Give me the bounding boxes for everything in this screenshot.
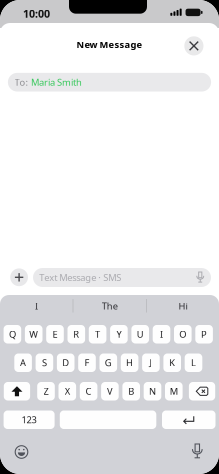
button[interactable]: N xyxy=(144,382,161,400)
button[interactable]: Delete xyxy=(189,382,215,400)
button[interactable]: Q xyxy=(4,325,21,343)
staticText: L xyxy=(191,357,196,369)
button[interactable]: L xyxy=(185,353,202,372)
button[interactable]: I xyxy=(1,297,71,315)
button[interactable]: The xyxy=(75,297,145,315)
staticText: A xyxy=(20,357,26,369)
button[interactable]: T xyxy=(89,325,106,343)
staticText: I xyxy=(160,328,163,340)
button[interactable]: Close xyxy=(184,36,203,55)
button[interactable]: E xyxy=(46,325,64,343)
staticText: M xyxy=(170,385,178,397)
button[interactable]: K xyxy=(163,353,181,372)
staticText: J xyxy=(149,357,152,369)
button[interactable]: A xyxy=(14,353,32,372)
button[interactable]: Numbers xyxy=(4,410,55,429)
button[interactable]: R xyxy=(67,325,85,343)
button[interactable]: G xyxy=(99,353,117,372)
staticText: N xyxy=(149,385,156,397)
staticText: New Message xyxy=(76,38,142,51)
staticText: P xyxy=(201,328,207,340)
button[interactable]: W xyxy=(25,325,42,343)
button[interactable]: S xyxy=(36,353,53,372)
button[interactable]: P xyxy=(195,325,213,343)
staticText: B xyxy=(128,385,134,397)
staticText: K xyxy=(169,357,175,369)
staticText: Y xyxy=(116,328,121,340)
staticText: Q xyxy=(9,328,16,340)
staticText: T xyxy=(95,328,100,340)
staticText: Z xyxy=(43,385,48,397)
staticText: F xyxy=(84,357,89,369)
staticText: C xyxy=(86,385,92,397)
button[interactable]: V xyxy=(101,382,119,400)
button[interactable]: Hi xyxy=(148,297,218,315)
button[interactable]: O xyxy=(174,325,192,343)
staticText: The xyxy=(102,300,118,312)
button[interactable]: Shift xyxy=(4,382,30,400)
staticText: E xyxy=(52,328,57,340)
button[interactable]: C xyxy=(80,382,97,400)
button[interactable]: I xyxy=(153,325,170,343)
staticText: G xyxy=(105,357,112,369)
staticText: R xyxy=(73,328,79,340)
staticText: Text Message · SMS xyxy=(39,271,121,284)
button[interactable]: U xyxy=(131,325,149,343)
staticText: H xyxy=(126,357,133,369)
button[interactable]: X xyxy=(58,382,76,400)
staticText: O xyxy=(179,328,186,340)
button[interactable]: M xyxy=(165,382,183,400)
staticText: V xyxy=(107,385,113,397)
button[interactable]: Y xyxy=(110,325,128,343)
staticText: U xyxy=(137,328,144,340)
staticText: X xyxy=(65,385,70,397)
button[interactable]: Text Message xyxy=(33,268,211,287)
button[interactable]: Dictation xyxy=(189,443,205,459)
staticText: 123 xyxy=(22,414,37,426)
staticText: W xyxy=(29,328,38,340)
staticText: D xyxy=(62,357,69,369)
button[interactable]: Space xyxy=(60,410,156,429)
staticText: S xyxy=(42,357,47,369)
staticText: Hi xyxy=(178,300,187,312)
button[interactable]: J xyxy=(142,353,160,372)
button[interactable]: To: xyxy=(8,73,211,92)
button[interactable]: D xyxy=(57,353,74,372)
staticText: I xyxy=(35,300,38,312)
button[interactable]: B xyxy=(122,382,140,400)
button[interactable]: H xyxy=(121,353,138,372)
button[interactable]: Return xyxy=(162,410,215,429)
button[interactable]: Add attachment xyxy=(10,268,28,286)
button[interactable]: Emoji xyxy=(13,444,29,460)
staticText: To: xyxy=(15,76,29,88)
button[interactable]: Z xyxy=(37,382,55,400)
staticText: 10:00 xyxy=(23,6,50,21)
staticText: Maria Smith xyxy=(31,76,82,88)
button[interactable]: F xyxy=(78,353,96,372)
